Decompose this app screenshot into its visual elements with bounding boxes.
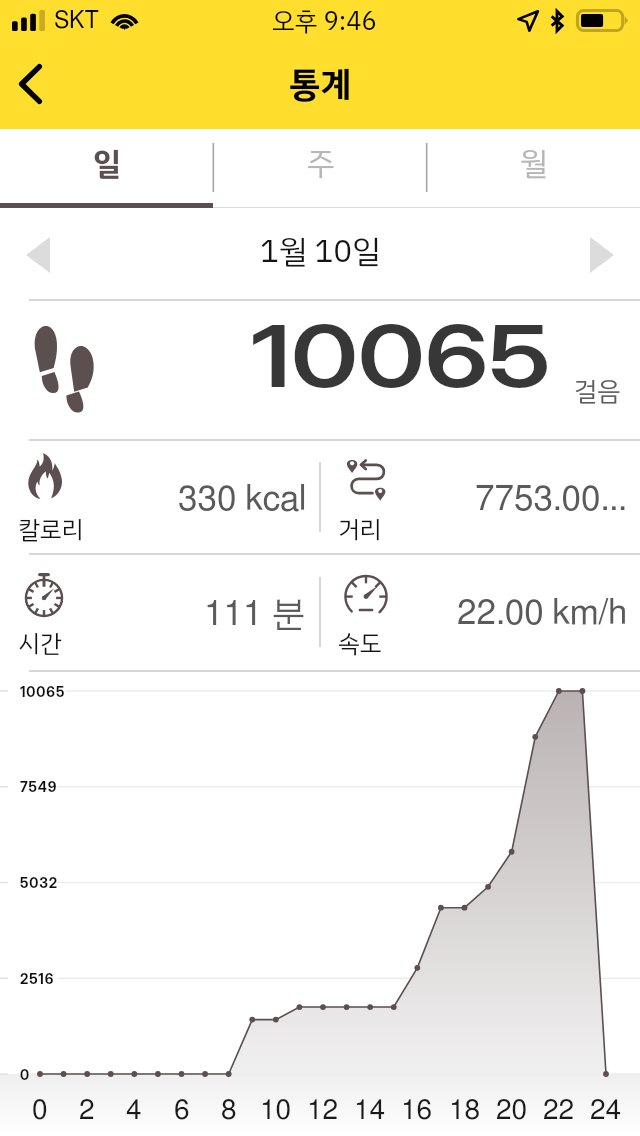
- staticText: 14: [354, 1097, 386, 1125]
- staticText: 16: [401, 1097, 433, 1125]
- staticText: 5032: [20, 874, 59, 891]
- staticText: 18: [449, 1097, 481, 1125]
- staticText: 6: [174, 1097, 190, 1125]
- button[interactable]: Back: [0, 49, 61, 119]
- staticText: 22: [543, 1097, 575, 1125]
- staticText: 12: [307, 1097, 339, 1125]
- staticText: 주: [307, 140, 335, 187]
- staticText: SKT: [54, 10, 99, 33]
- staticText: 2: [79, 1097, 95, 1125]
- staticText: 칼로리: [18, 511, 84, 548]
- staticText: 330 kcal: [178, 482, 307, 517]
- staticText: 2516: [20, 970, 55, 987]
- button[interactable]: 일: [0, 129, 214, 209]
- staticText: 111 분: [204, 591, 307, 635]
- staticText: 0: [20, 1066, 31, 1083]
- staticText: 통계: [289, 58, 352, 111]
- staticText: 0: [32, 1097, 48, 1125]
- staticText: 7753.00...: [475, 482, 627, 517]
- staticText: 시간: [18, 625, 62, 662]
- button[interactable]: 속도: [320, 555, 640, 669]
- staticText: 7549: [20, 778, 58, 795]
- button[interactable]: 칼로리: [0, 441, 320, 555]
- staticText: 걸음: [574, 372, 621, 411]
- staticText: 1월 10일: [260, 228, 381, 275]
- button[interactable]: Previous day: [12, 229, 64, 281]
- staticText: 일: [93, 140, 121, 187]
- staticText: 오후 9:46: [272, 2, 377, 40]
- staticText: 10065: [20, 683, 66, 700]
- staticText: 24: [590, 1097, 622, 1125]
- button[interactable]: 거리: [320, 441, 640, 555]
- staticText: 거리: [338, 511, 382, 548]
- staticText: 22.00 km/h: [457, 596, 627, 631]
- staticText: 10: [260, 1097, 292, 1125]
- staticText: 4: [126, 1097, 142, 1125]
- button[interactable]: 주: [214, 129, 427, 209]
- staticText: 속도: [338, 625, 382, 662]
- button[interactable]: 시간: [0, 555, 320, 669]
- staticText: 8: [221, 1097, 237, 1125]
- button[interactable]: 월: [427, 129, 640, 209]
- staticText: 10065: [251, 305, 551, 408]
- button[interactable]: Next day: [576, 229, 628, 281]
- staticText: 월: [520, 140, 548, 187]
- staticText: 20: [496, 1097, 528, 1125]
